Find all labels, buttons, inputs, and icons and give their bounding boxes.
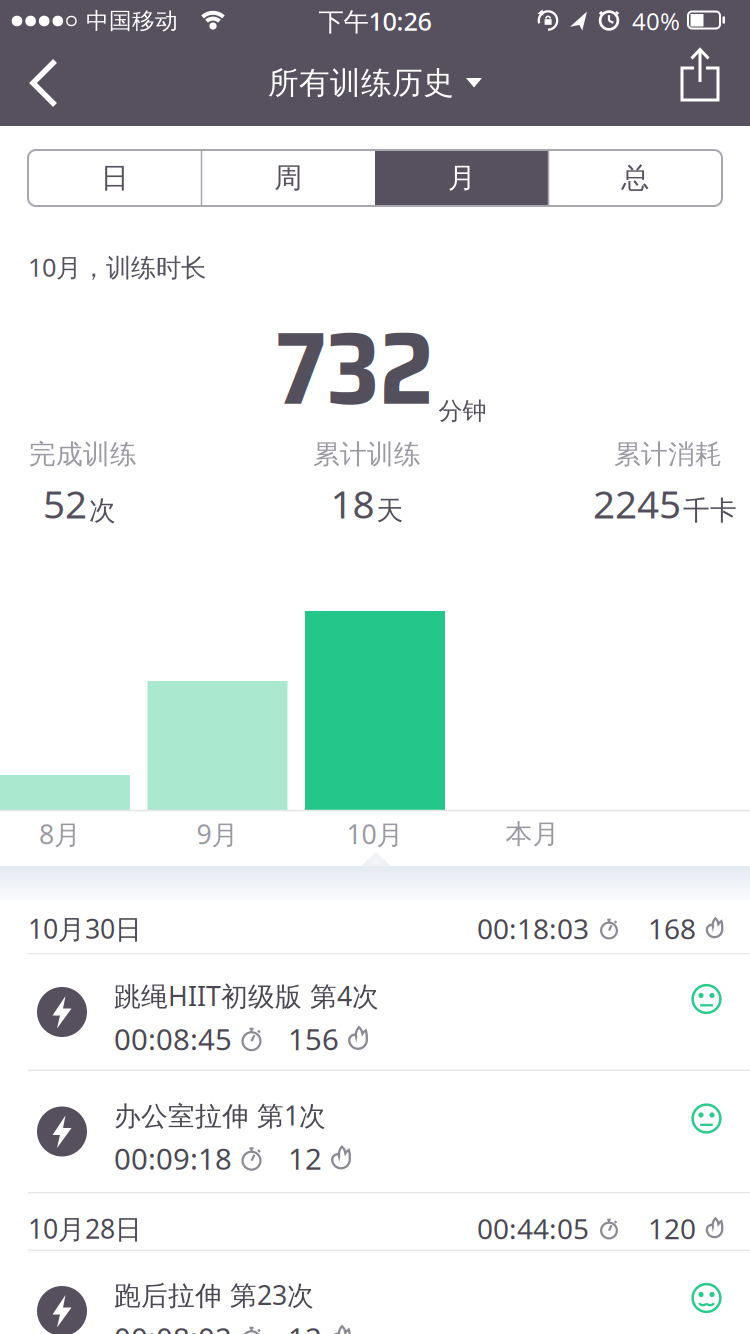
button[interactable]: 所有训练历史 (268, 40, 482, 126)
staticText: 中国移动 (86, 7, 178, 35)
staticText: 办公室拉伸 第1次 (114, 1097, 326, 1133)
staticText: 00:09:18 (114, 1139, 232, 1178)
staticText: 10月28日 (28, 1211, 142, 1246)
staticText: 52 (43, 478, 87, 529)
staticText: 天 (376, 494, 403, 527)
staticText: 完成训练 (29, 438, 137, 471)
staticText: 日 (101, 161, 129, 195)
staticText: 总 (621, 161, 649, 195)
staticText: 156 (288, 1019, 339, 1058)
button[interactable]: Share (677, 48, 723, 118)
button[interactable]: 跑后拉伸 第23次 (0, 1251, 750, 1334)
staticText: 00:08:45 (114, 1019, 232, 1058)
button[interactable]: 日 (28, 150, 201, 206)
staticText: 跳绳HIIT初级版 第4次 (114, 978, 379, 1013)
button[interactable]: 周 (201, 150, 375, 206)
staticText: 10月 (346, 816, 403, 852)
button[interactable]: 月 (375, 150, 548, 206)
staticText: 12 (288, 1139, 322, 1178)
button[interactable]: 跳绳HIIT初级版 第4次 (0, 954, 750, 1069)
staticText: 下午10:26 (318, 4, 431, 38)
button[interactable]: 总 (548, 150, 722, 206)
staticText: 次 (89, 494, 116, 527)
staticText: 8月 (39, 816, 81, 852)
staticText: 00:18:03 (477, 910, 589, 947)
staticText: 40% (632, 5, 680, 37)
staticText: 本月 (505, 818, 559, 850)
staticText: 累计训练 (313, 438, 421, 471)
staticText: 10月，训练时长 (28, 250, 206, 284)
button[interactable]: Back (20, 40, 86, 126)
staticText: 00:08:02 (114, 1318, 232, 1334)
staticText: 10月30日 (28, 911, 142, 946)
staticText: 18 (330, 478, 374, 529)
staticText: 12 (288, 1318, 322, 1334)
button[interactable]: 办公室拉伸 第1次 (0, 1071, 750, 1192)
staticText: 168 (648, 910, 696, 947)
staticText: 00:44:05 (477, 1210, 589, 1247)
staticText: 所有训练历史 (268, 64, 454, 102)
staticText: 千卡 (683, 494, 737, 527)
staticText: 累计消耗 (614, 438, 722, 471)
staticText: 周 (274, 161, 302, 195)
staticText: 分钟 (438, 396, 486, 426)
staticText: 9月 (196, 816, 238, 852)
staticText: 跑后拉伸 第23次 (114, 1277, 314, 1312)
staticText: 2245 (593, 478, 681, 529)
staticText: 732 (275, 287, 433, 449)
staticText: 月 (448, 161, 476, 195)
staticText: 120 (648, 1210, 696, 1247)
